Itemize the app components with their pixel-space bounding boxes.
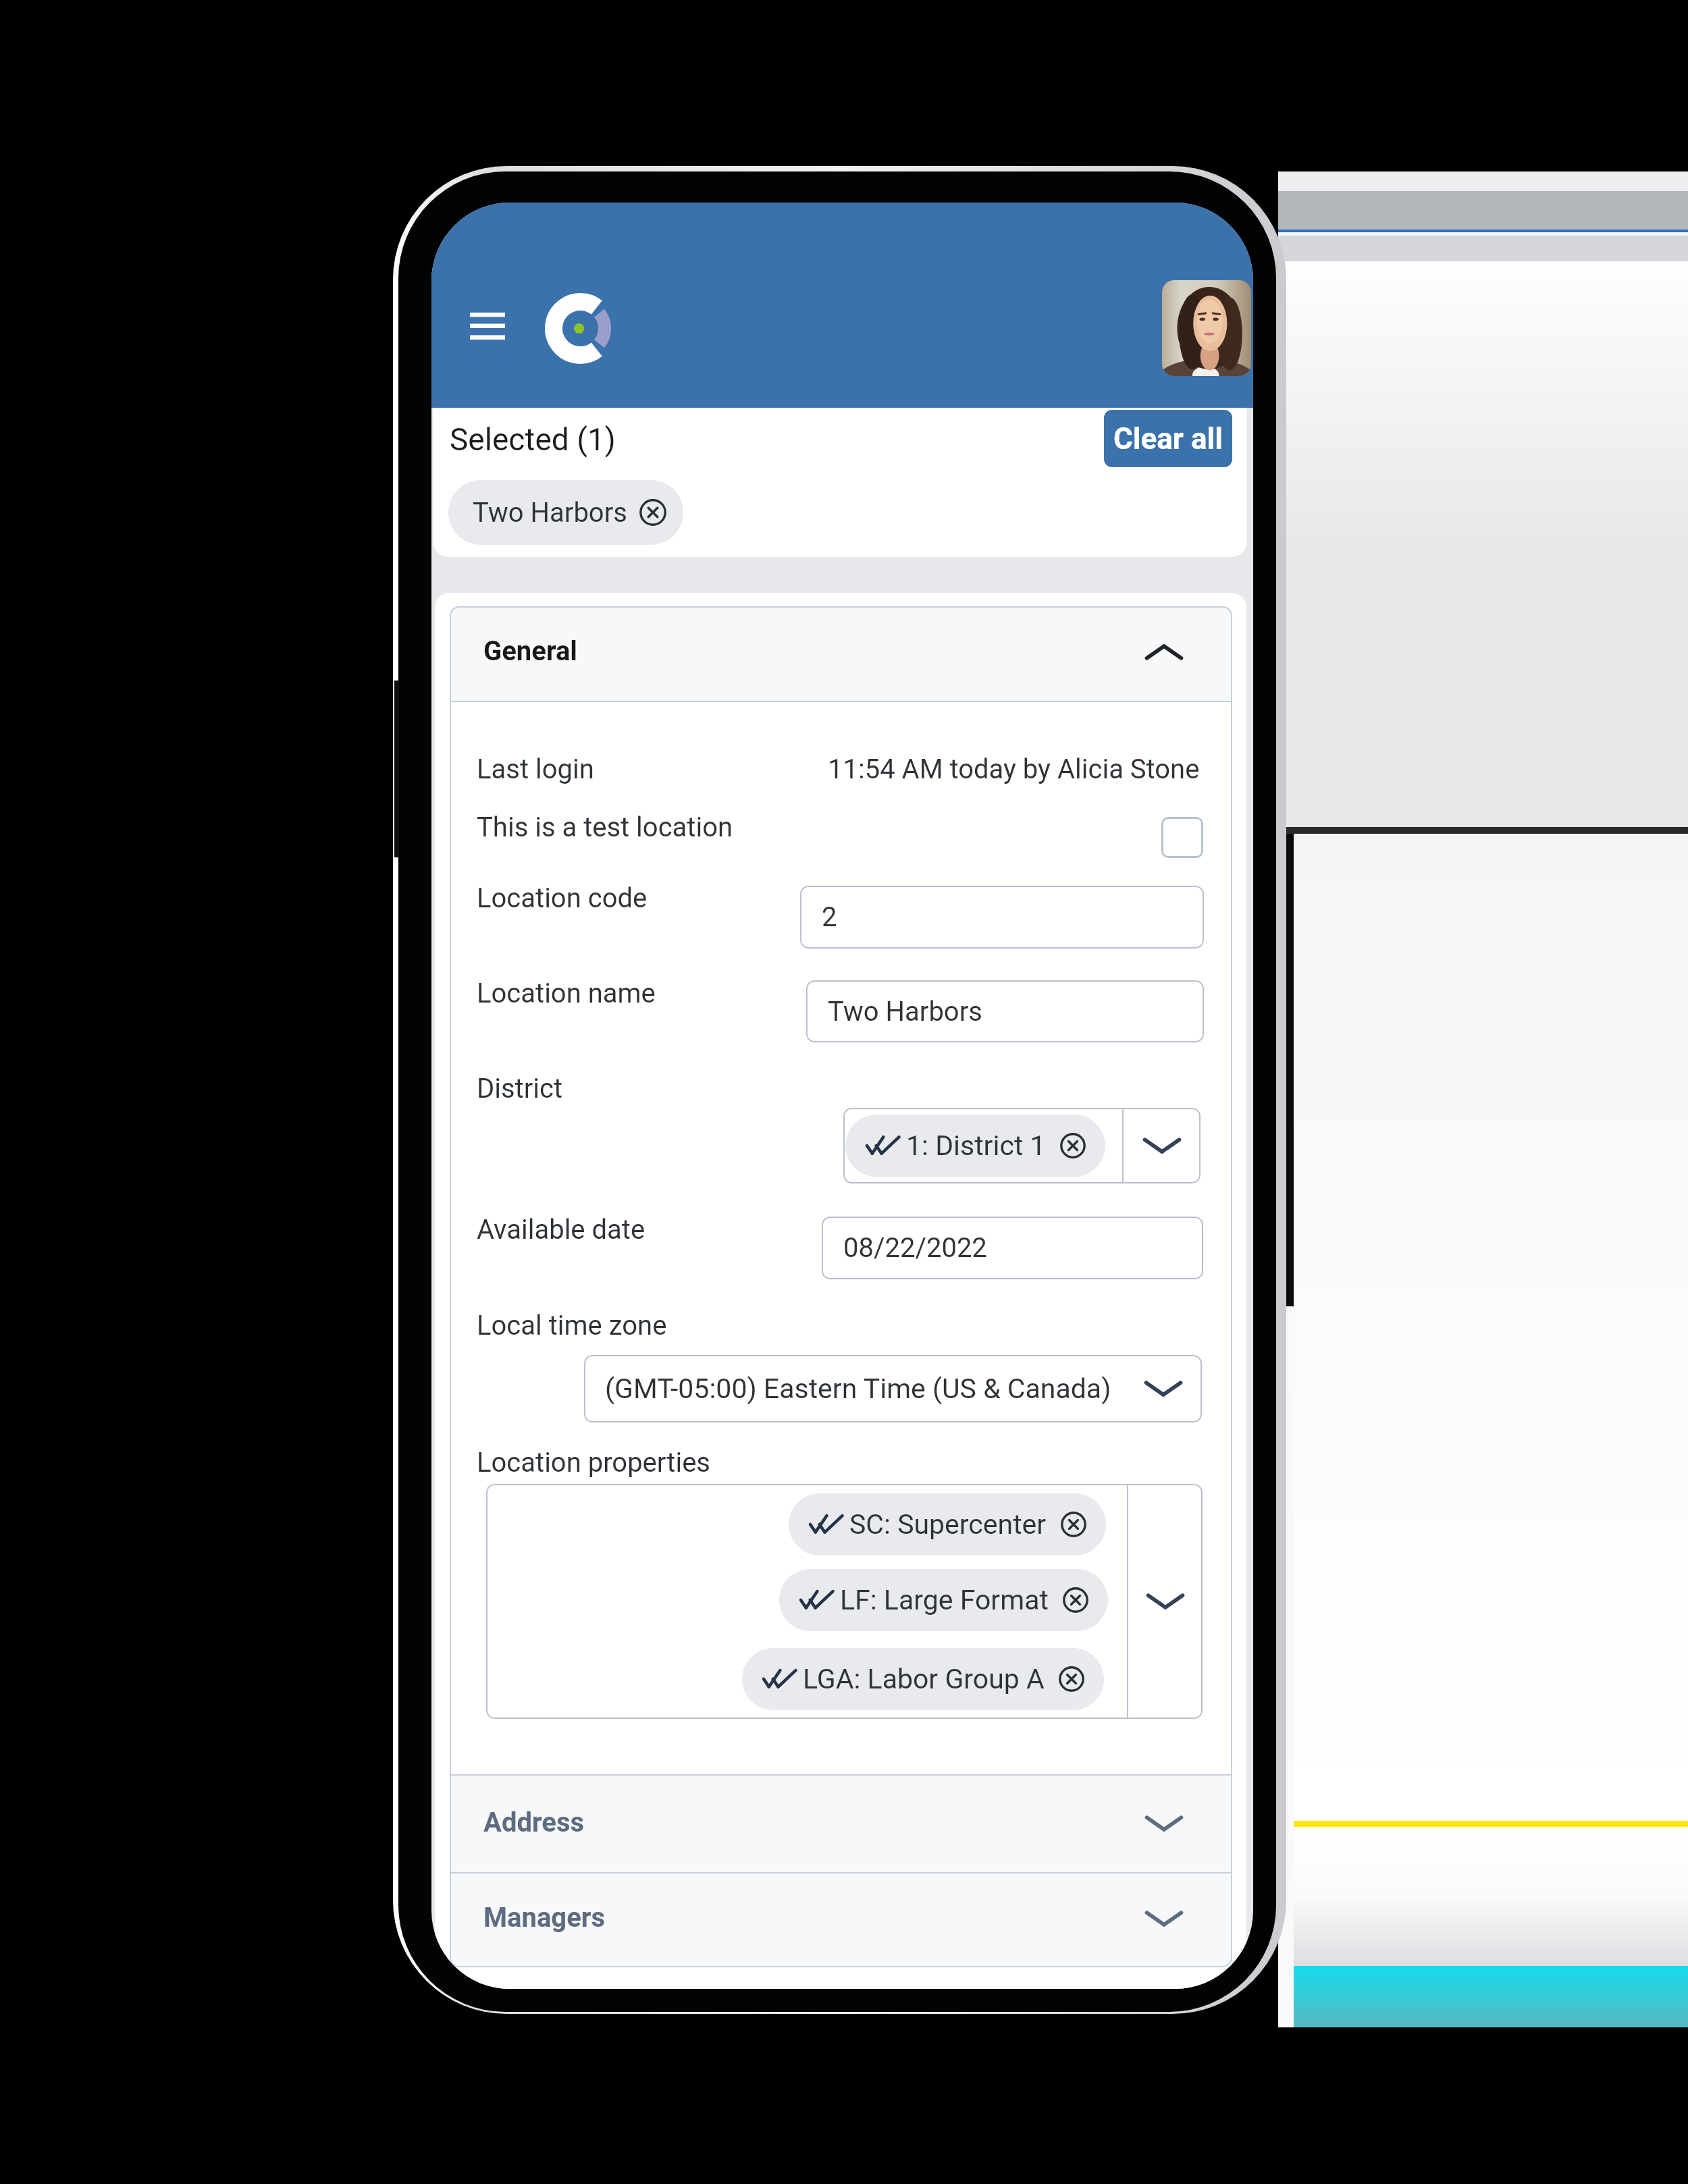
staticText: 1: District 1 <box>906 1129 1046 1162</box>
button[interactable]: Address <box>450 1776 1232 1873</box>
staticText: Local time zone <box>477 1310 667 1341</box>
staticText: Location name <box>477 978 656 1009</box>
staticText: Last login <box>477 753 594 785</box>
button[interactable]: Managers <box>450 1873 1232 1966</box>
staticText: Managers <box>483 1902 605 1934</box>
button[interactable]: SC: Supercenter <box>486 1484 1203 1719</box>
button[interactable]: General <box>450 606 1232 701</box>
button[interactable]: 08/22/2022 <box>822 1217 1203 1279</box>
button[interactable]: LF: Large Format <box>779 1569 1108 1631</box>
button[interactable]: Two Harbors <box>806 980 1204 1042</box>
staticText: Two Harbors <box>473 497 627 529</box>
staticText: Available date <box>477 1214 645 1246</box>
button[interactable]: (GMT-05:00) Eastern Time (US & Canada) <box>584 1355 1202 1422</box>
button[interactable]: 1: District 1 <box>843 1108 1201 1183</box>
button[interactable]: SC: Supercenter <box>789 1493 1106 1555</box>
staticText: General <box>483 635 577 667</box>
button[interactable]: LGA: Labor Group A <box>742 1648 1104 1710</box>
staticText: LF: Large Format <box>840 1584 1049 1616</box>
button[interactable]: 1: District 1 <box>845 1115 1105 1177</box>
staticText: Clear all <box>1113 421 1223 456</box>
button[interactable]: Open district list <box>1124 1108 1201 1183</box>
button[interactable]: Clear all <box>1104 410 1232 467</box>
button[interactable]: User profile <box>1162 280 1251 376</box>
staticText: SC: Supercenter <box>849 1508 1047 1541</box>
button[interactable]: 2 <box>800 886 1204 949</box>
button[interactable]: Open navigation menu <box>451 294 524 358</box>
staticText: This is a test location <box>477 811 733 843</box>
staticText: (GMT-05:00) Eastern Time (US & Canada) <box>605 1373 1111 1405</box>
staticText: 08/22/2022 <box>843 1232 987 1264</box>
staticText: 11:54 AM today by Alicia Stone <box>828 753 1200 785</box>
staticText: Location properties <box>477 1447 710 1479</box>
button[interactable]: This is a test location <box>1161 817 1203 858</box>
staticText: Two Harbors <box>828 996 982 1028</box>
button[interactable]: Open location properties list <box>1128 1484 1203 1719</box>
staticText: LGA: Labor Group A <box>803 1663 1045 1695</box>
staticText: Location code <box>477 882 648 914</box>
staticText: Address <box>483 1807 585 1838</box>
staticText: 2 <box>822 901 837 933</box>
staticText: District <box>477 1073 563 1104</box>
button[interactable]: Two Harbors <box>448 480 683 545</box>
staticText: Selected (1) <box>450 421 616 458</box>
